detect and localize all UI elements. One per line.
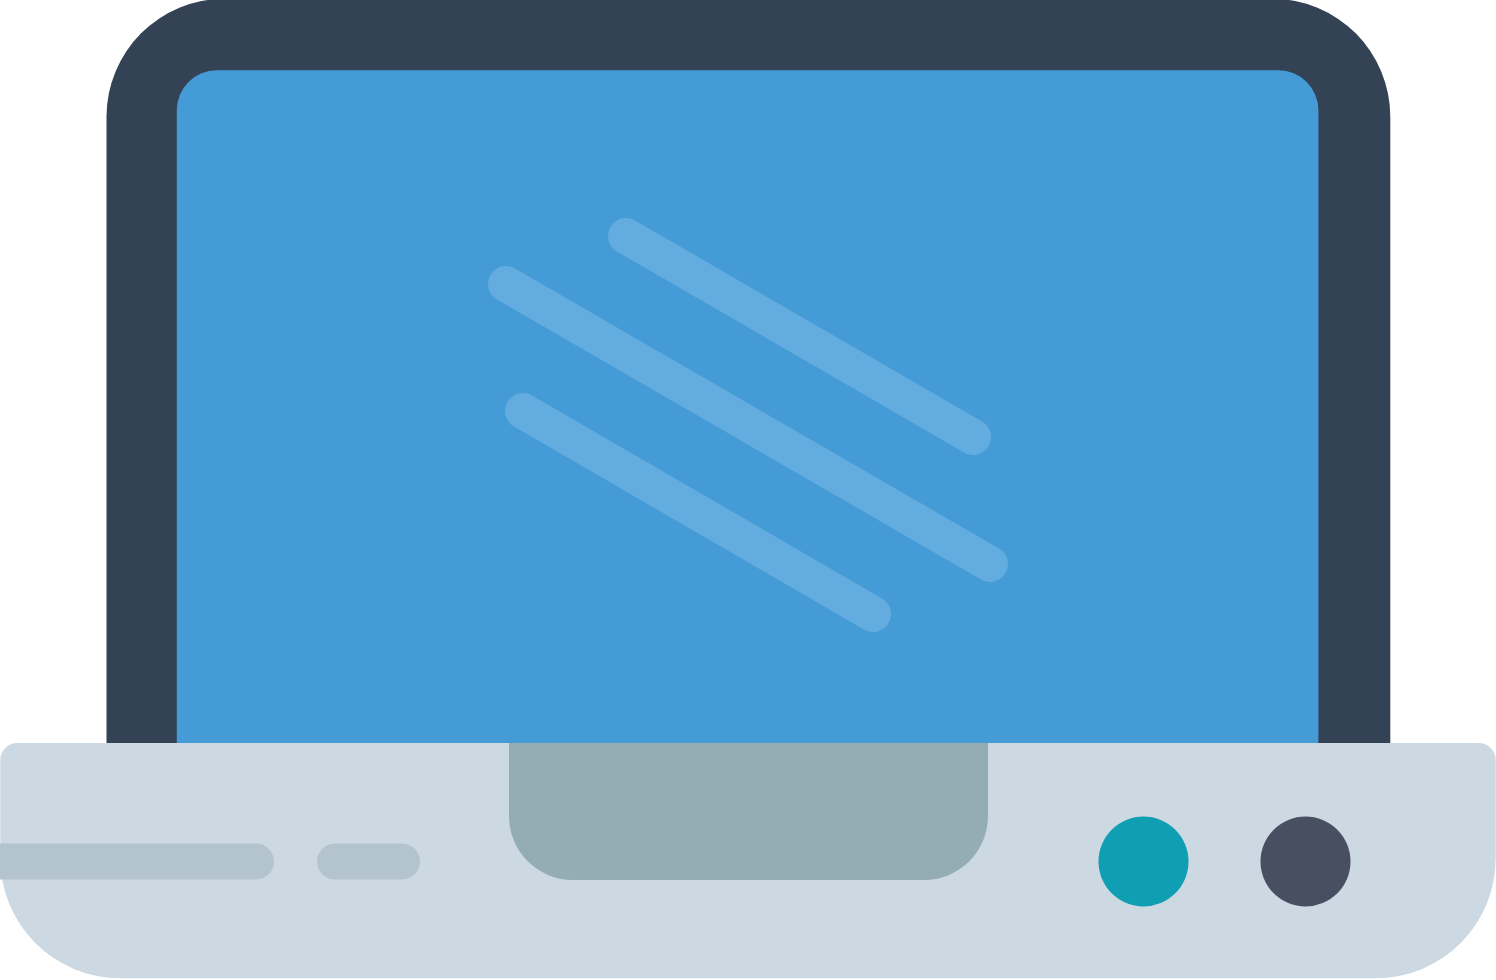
button[interactable]: Laptop computer illustration [0,0,1496,980]
